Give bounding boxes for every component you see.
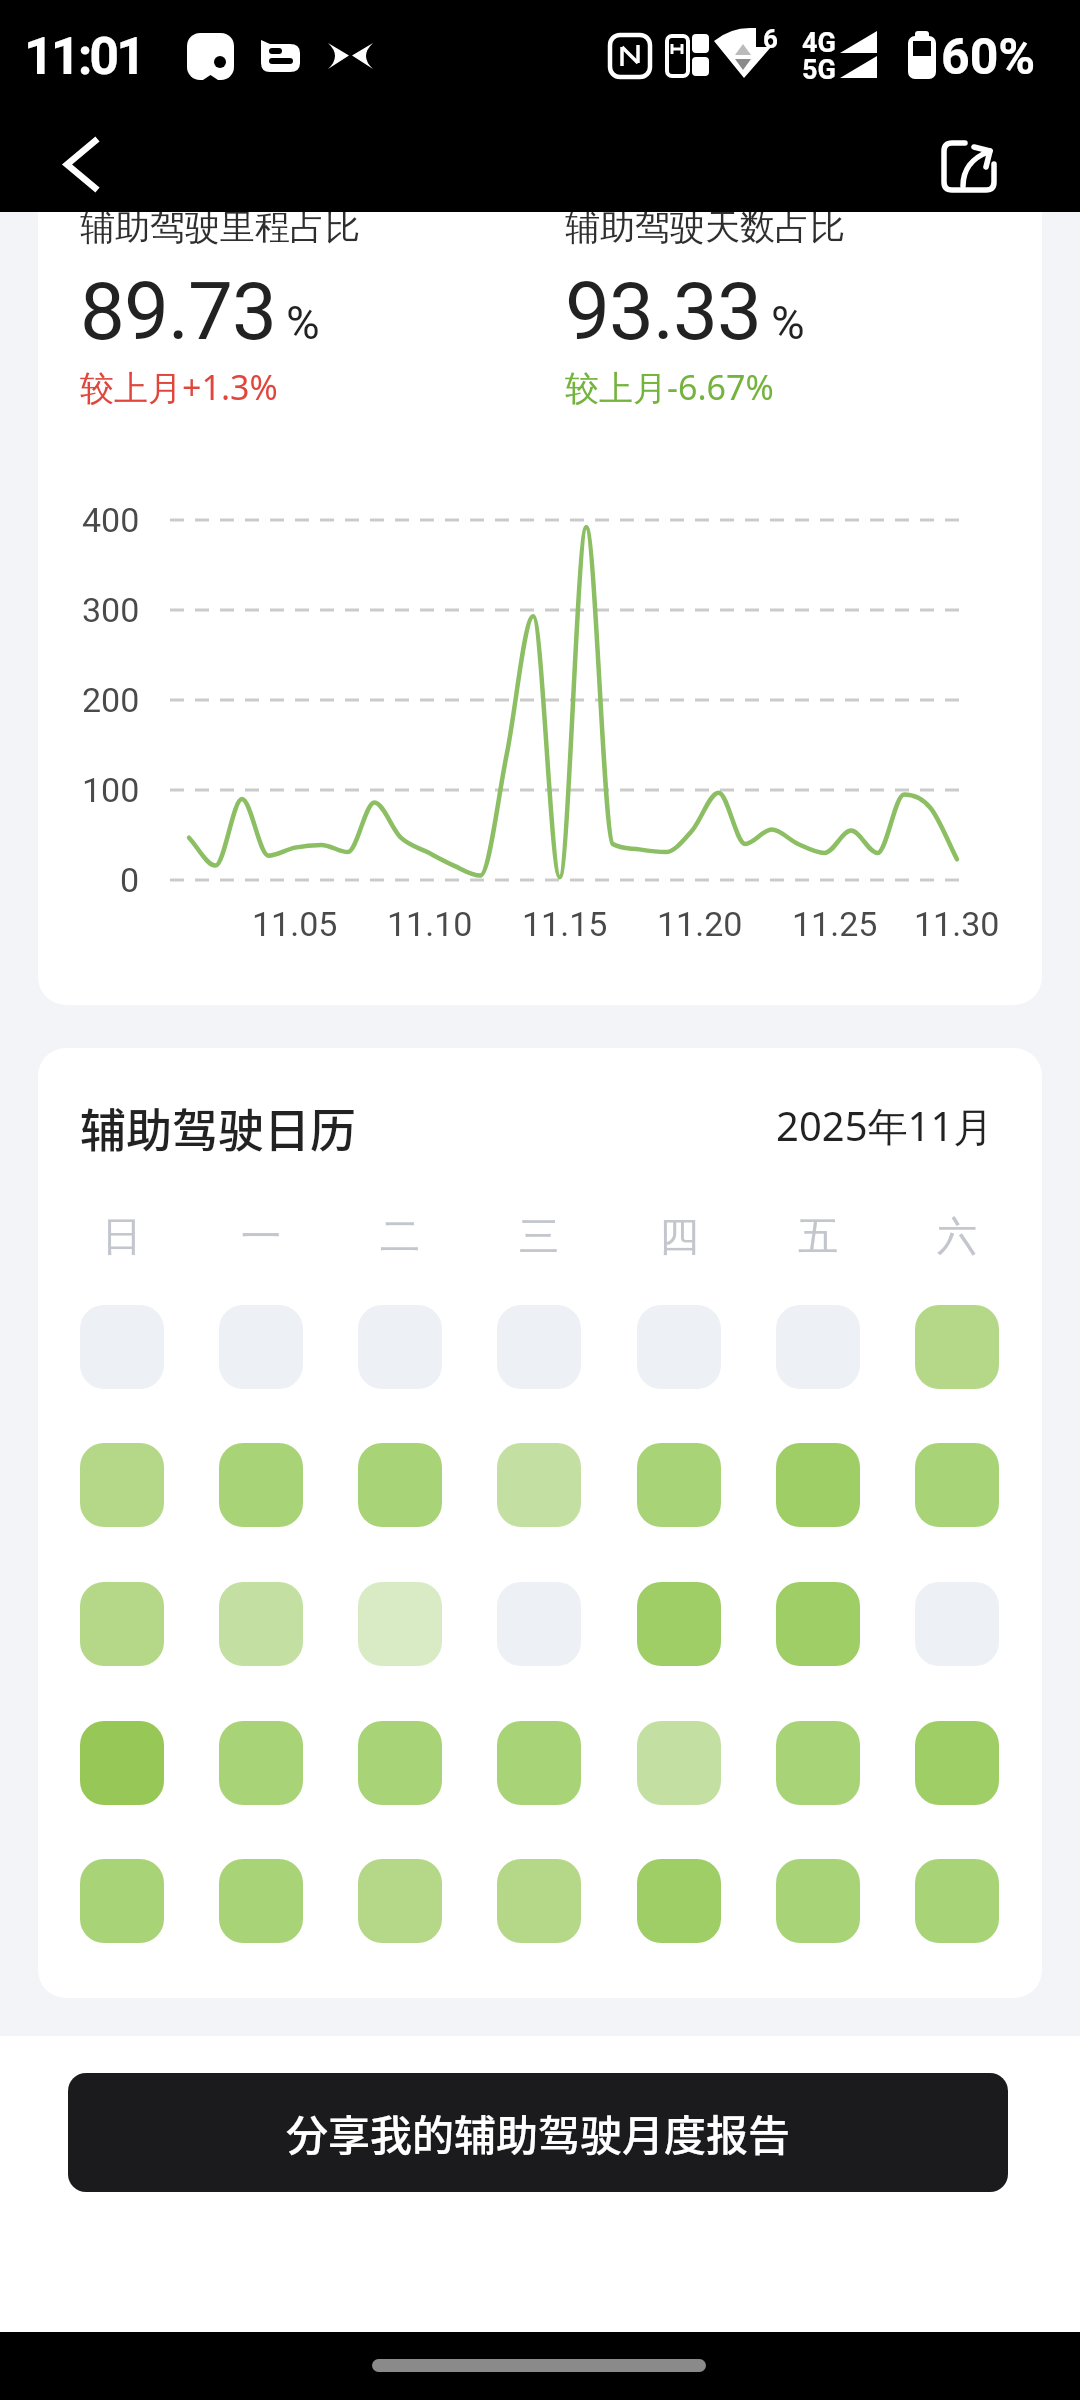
- staticText: 6: [763, 24, 778, 50]
- staticText: 五: [798, 1211, 838, 1261]
- staticText: 较上月-6.67%: [565, 364, 774, 410]
- staticText: 11.30: [914, 904, 1000, 944]
- staticText: 辅助驾驶里程占比: [80, 205, 360, 249]
- staticText: 11.15: [522, 904, 608, 944]
- staticText: 200: [82, 680, 140, 720]
- staticText: %: [286, 296, 320, 350]
- staticText: 分享我的辅助驾驶月度报告: [286, 2102, 791, 2163]
- staticText: 11:01: [24, 26, 144, 82]
- button[interactable]: [40, 130, 110, 200]
- staticText: 100: [82, 770, 140, 810]
- staticText: 11.25: [792, 904, 878, 944]
- staticText: 11.05: [252, 904, 338, 944]
- staticText: %: [771, 296, 805, 350]
- staticText: 较上月+1.3%: [80, 364, 278, 410]
- staticText: 0: [120, 860, 140, 900]
- button[interactable]: [934, 130, 1004, 200]
- staticText: 5G: [802, 54, 836, 82]
- staticText: 60%: [941, 28, 1036, 80]
- staticText: 三: [519, 1211, 559, 1261]
- staticText: 4G: [802, 27, 836, 55]
- staticText: 400: [82, 500, 140, 540]
- staticText: 一: [241, 1211, 281, 1261]
- staticText: 93.33: [565, 265, 761, 359]
- staticText: 辅助驾驶日历: [80, 1094, 356, 1152]
- staticText: 辅助驾驶天数占比: [565, 205, 845, 249]
- staticText: 11.20: [657, 904, 743, 944]
- staticText: 89.73: [80, 265, 276, 359]
- staticText: 二: [380, 1211, 420, 1261]
- staticText: 2025年11月: [776, 1098, 994, 1148]
- staticText: 11.10: [387, 904, 473, 944]
- staticText: 300: [82, 590, 140, 630]
- staticText: 四: [659, 1211, 699, 1261]
- staticText: 日: [102, 1211, 142, 1261]
- button[interactable]: 分享我的辅助驾驶月度报告: [68, 2073, 1008, 2192]
- staticText: 六: [937, 1211, 977, 1261]
